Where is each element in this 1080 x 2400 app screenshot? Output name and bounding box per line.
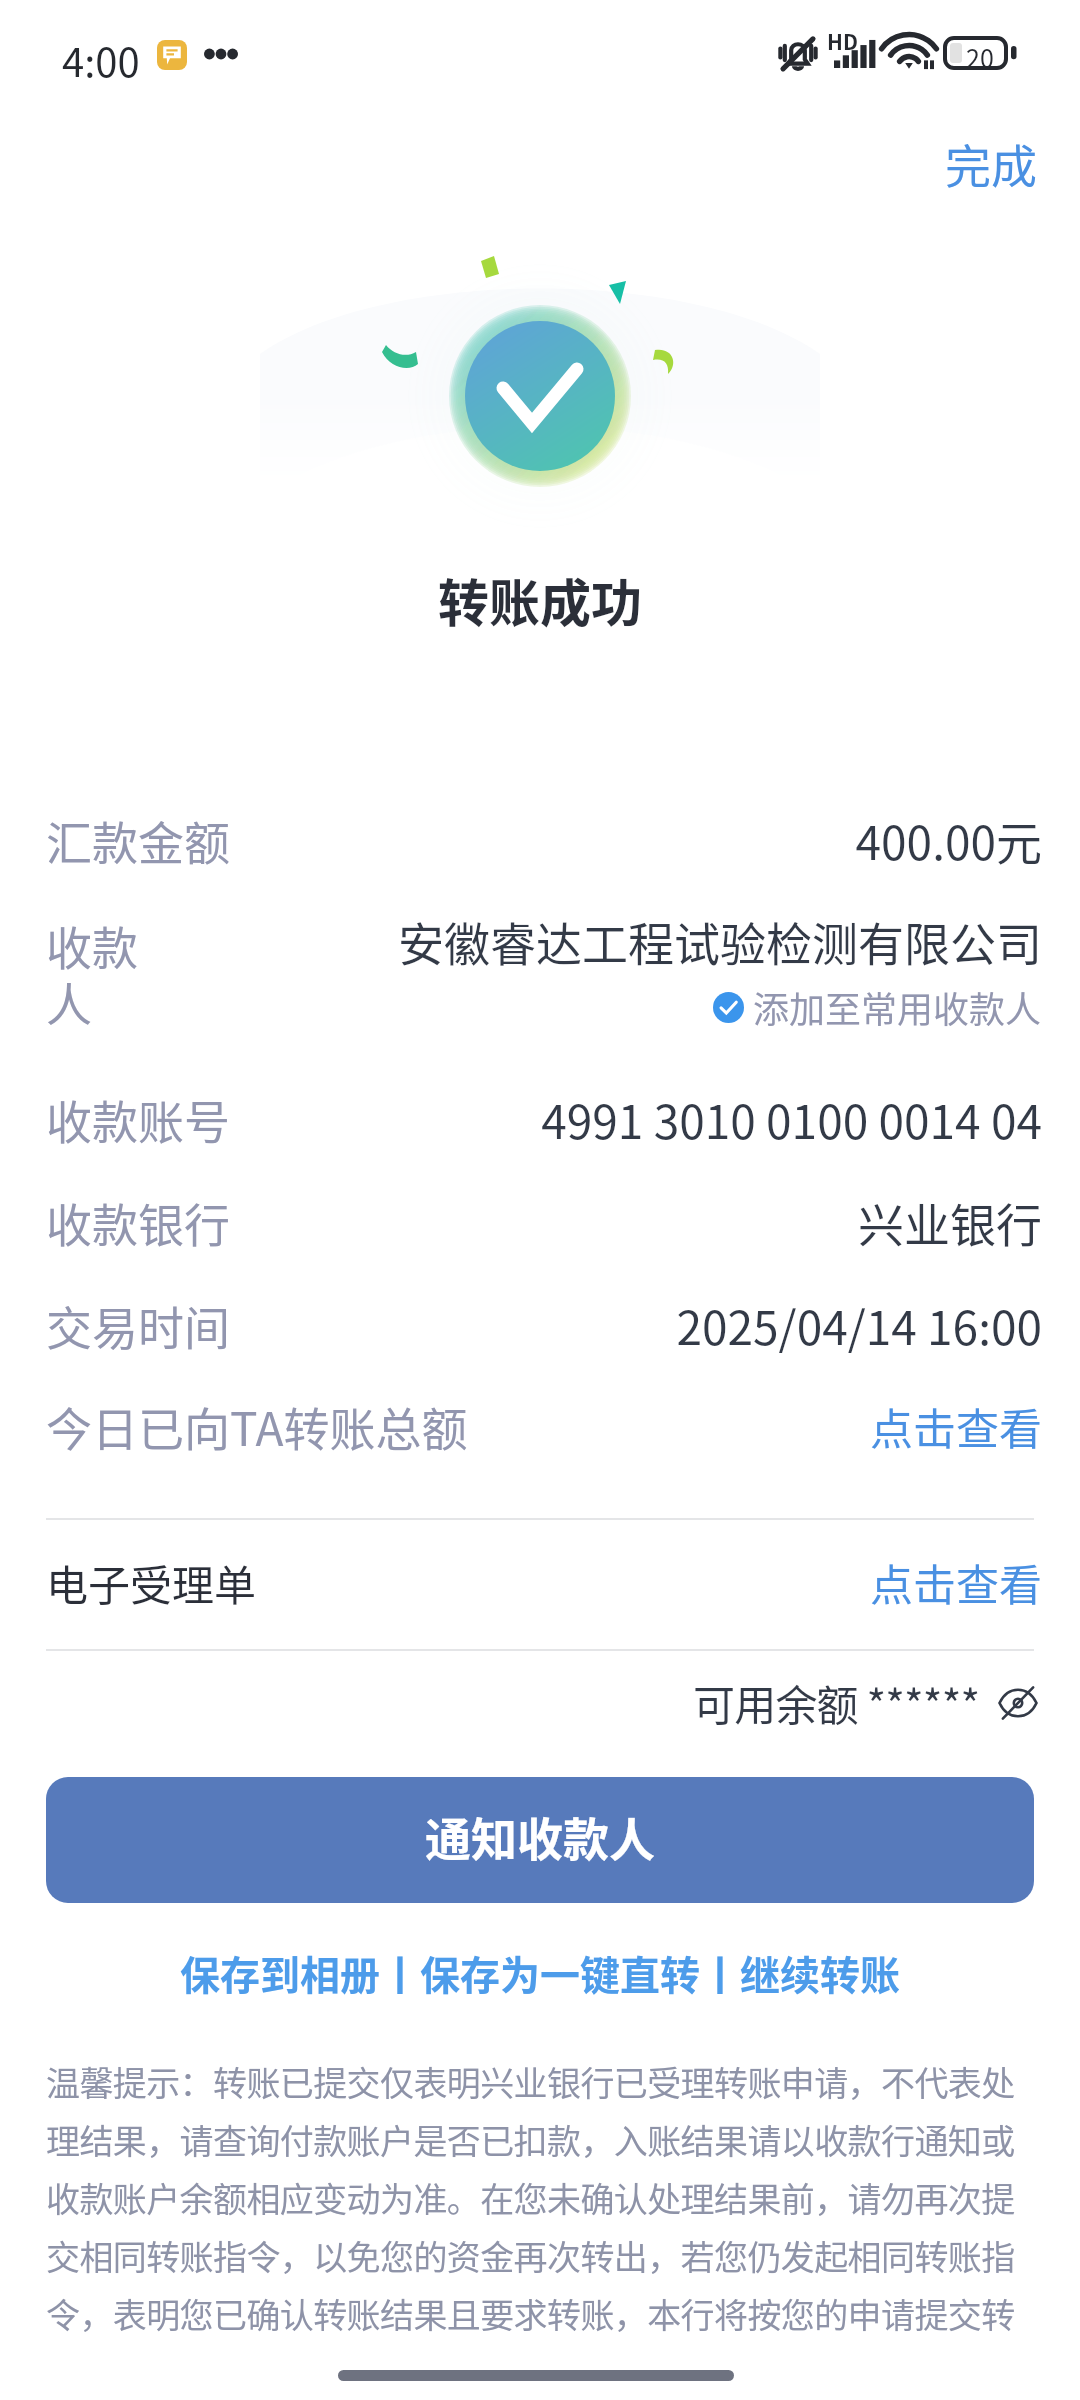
staticText: 今日已向TA转账总额	[46, 1393, 468, 1460]
staticText: 温馨提示：转账已提交仅表明兴业银行已受理转账申请，不代表处理结果，请查询付款账户…	[46, 2057, 1040, 2338]
staticText: 添加至常用收款人	[753, 981, 1042, 1033]
button[interactable]: 电子受理单	[46, 1517, 1042, 1645]
staticText: 收款人	[46, 912, 146, 1034]
button[interactable]: 添加至常用收款人	[713, 979, 1042, 1035]
staticText: 交易时间	[46, 1292, 230, 1359]
staticText: 完成	[945, 130, 1037, 197]
staticText: 400.00元	[855, 807, 1042, 874]
button[interactable]: 完成	[911, 118, 1067, 210]
staticText: 点击查看	[870, 1551, 1042, 1613]
staticText: HD	[827, 26, 858, 56]
staticText: 汇款金额	[46, 807, 230, 874]
staticText: 通知收款人	[425, 1803, 655, 1870]
staticText: 可用余额 ******	[693, 1672, 980, 1733]
staticText: 20	[966, 39, 994, 75]
button[interactable]: 今日已向TA转账总额	[46, 1383, 1042, 1471]
staticText: 2025/04/14 16:00	[676, 1292, 1042, 1359]
staticText: 收款账号	[46, 1086, 230, 1153]
staticText: 兴业银行	[858, 1189, 1042, 1256]
button[interactable]: 通知收款人	[46, 1777, 1034, 1903]
staticText: 保存到相册丨保存为一键直转丨继续转账	[180, 1944, 900, 2002]
staticText: 转账成功	[438, 563, 643, 637]
button[interactable]: 保存到相册丨保存为一键直转丨继续转账	[176, 1940, 904, 2006]
staticText: 电子受理单	[46, 1552, 257, 1613]
staticText: 4991 3010 0100 0014 04	[541, 1086, 1042, 1153]
button[interactable]: 显示余额	[994, 1679, 1042, 1727]
staticText: 4:00	[62, 31, 140, 89]
staticText: 安徽睿达工程试验检测有限公司	[398, 908, 1042, 975]
staticText: 点击查看	[870, 1395, 1042, 1457]
staticText: 收款银行	[46, 1189, 230, 1256]
